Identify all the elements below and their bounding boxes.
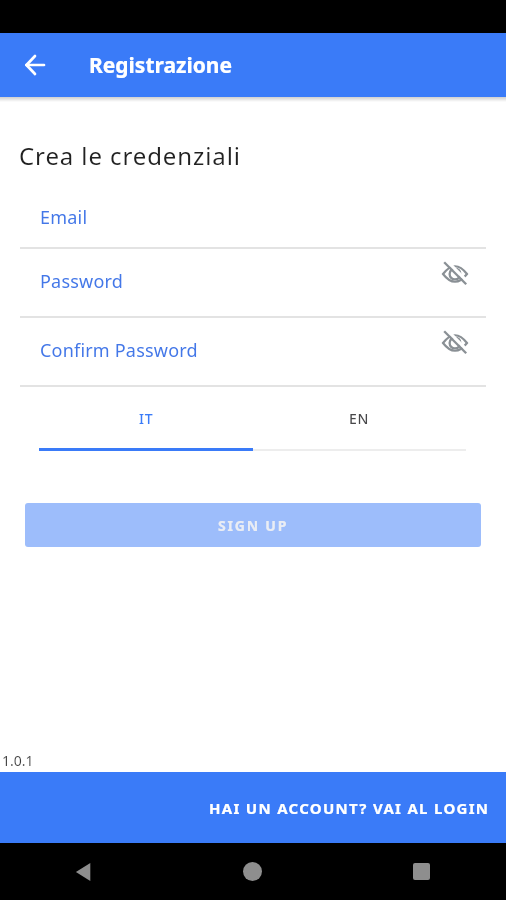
staticText: Registrazione: [89, 51, 233, 80]
button[interactable]: [0, 843, 168, 900]
button[interactable]: [168, 843, 337, 900]
button[interactable]: [14, 44, 56, 86]
staticText: 1.0.1: [2, 751, 34, 770]
button[interactable]: [437, 325, 473, 361]
staticText: HAI UN ACCOUNT? VAI AL LOGIN: [209, 798, 490, 818]
button[interactable]: HAI UN ACCOUNT? VAI AL LOGIN: [0, 772, 506, 843]
staticText: Crea le credenziali: [19, 139, 241, 172]
staticText: IT: [139, 409, 154, 428]
staticText: Confirm Password: [40, 338, 198, 363]
staticText: EN: [349, 409, 370, 428]
staticText: SIGN UP: [218, 516, 289, 535]
button[interactable]: IT: [39, 392, 253, 444]
staticText: Password: [40, 269, 124, 294]
button[interactable]: [437, 256, 473, 292]
staticText: Email: [40, 205, 88, 230]
button[interactable]: [337, 843, 506, 900]
button[interactable]: SIGN UP: [25, 503, 481, 547]
button[interactable]: EN: [253, 392, 466, 444]
